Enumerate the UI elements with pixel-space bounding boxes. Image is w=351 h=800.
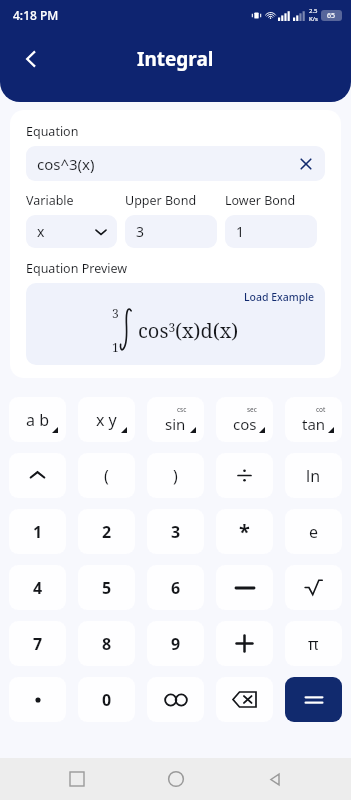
staticText: *: [239, 518, 250, 545]
button[interactable]: Multiply: [216, 509, 273, 554]
staticText: 4:18 PM: [13, 7, 59, 23]
button[interactable]: x: [26, 215, 117, 248]
button[interactable]: Clear equation: [293, 151, 319, 177]
staticText: cos3(x)d(x): [138, 317, 239, 344]
staticText: cos: [233, 414, 257, 434]
button[interactable]: cot: [285, 397, 342, 442]
button[interactable]: 6: [147, 565, 204, 610]
staticText: cot: [316, 405, 326, 414]
button[interactable]: 4: [9, 565, 66, 610]
staticText: 1: [112, 339, 119, 355]
staticText: Variable: [26, 192, 74, 209]
staticText: x y: [96, 409, 117, 431]
staticText: sin: [165, 414, 186, 434]
button[interactable]: 8: [78, 621, 135, 666]
button[interactable]: Load Example: [242, 288, 317, 306]
staticText: 9: [171, 633, 181, 655]
button[interactable]: Plus: [216, 621, 273, 666]
staticText: ln: [306, 465, 321, 487]
button[interactable]: Divide: [216, 453, 273, 498]
button[interactable]: ): [147, 453, 204, 498]
button[interactable]: Recent apps: [55, 758, 99, 800]
staticText: e: [309, 521, 319, 543]
button[interactable]: Home: [154, 758, 198, 800]
staticText: 5: [102, 577, 112, 599]
staticText: π: [308, 633, 319, 655]
staticText: (: [104, 465, 109, 487]
button[interactable]: x y: [78, 397, 135, 442]
button[interactable]: ln: [285, 453, 342, 498]
staticText: Lower Bond: [225, 192, 296, 209]
button[interactable]: 3: [125, 215, 217, 248]
staticText: Equation: [26, 123, 79, 140]
button[interactable]: 1: [225, 215, 317, 248]
staticText: K/s: [309, 15, 318, 23]
button[interactable]: Square root: [285, 565, 342, 610]
staticText: cos^3(x): [37, 154, 95, 174]
button[interactable]: e: [285, 509, 342, 554]
button[interactable]: 7: [9, 621, 66, 666]
staticText: sec: [247, 405, 257, 414]
button[interactable]: 5: [78, 565, 135, 610]
button[interactable]: 0: [78, 677, 135, 722]
staticText: ): [173, 465, 178, 487]
staticText: 2: [102, 521, 112, 543]
staticText: Upper Bond: [125, 192, 197, 209]
button[interactable]: 3: [147, 509, 204, 554]
staticText: x: [37, 222, 45, 241]
staticText: 0: [102, 689, 112, 711]
button[interactable]: cos^3(x): [26, 146, 325, 181]
button[interactable]: Backspace: [216, 677, 273, 722]
staticText: 3: [136, 222, 145, 241]
staticText: 2.5: [309, 7, 318, 15]
button[interactable]: 9: [147, 621, 204, 666]
staticText: tan: [302, 414, 326, 434]
staticText: 7: [33, 633, 43, 655]
button[interactable]: Back: [252, 758, 296, 800]
button[interactable]: 1: [9, 509, 66, 554]
button[interactable]: 2: [78, 509, 135, 554]
staticText: 3: [171, 521, 181, 543]
button[interactable]: (: [78, 453, 135, 498]
staticText: 8: [102, 633, 112, 655]
button[interactable]: Infinity: [147, 677, 204, 722]
staticText: 65: [327, 11, 336, 21]
staticText: 6: [171, 577, 181, 599]
button[interactable]: Equals: [285, 677, 342, 722]
button[interactable]: a b: [9, 397, 66, 442]
staticText: 1: [33, 521, 43, 543]
button[interactable]: csc: [147, 397, 204, 442]
button[interactable]: Power: [9, 453, 66, 498]
button[interactable]: Decimal point: [9, 677, 66, 722]
staticText: csc: [177, 405, 187, 414]
staticText: 1: [236, 222, 245, 241]
staticText: 3: [112, 305, 119, 321]
staticText: 4: [33, 577, 43, 599]
button[interactable]: π: [285, 621, 342, 666]
button[interactable]: Back: [10, 38, 52, 80]
button[interactable]: Minus: [216, 565, 273, 610]
button[interactable]: sec: [216, 397, 273, 442]
staticText: Equation Preview: [26, 260, 128, 277]
staticText: a b: [26, 409, 49, 431]
staticText: Integral: [137, 46, 214, 72]
